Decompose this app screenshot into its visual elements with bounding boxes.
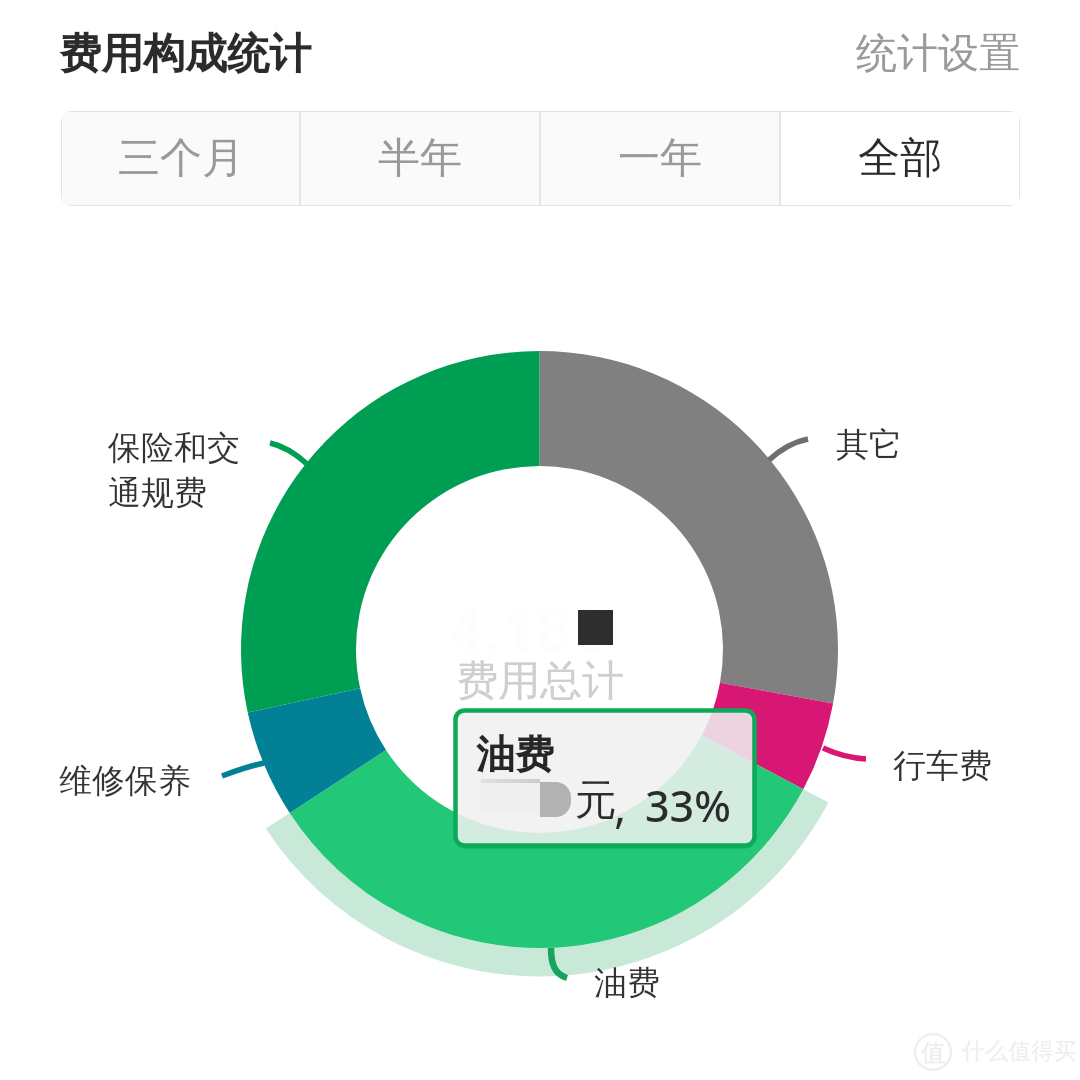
- button[interactable]: 一年: [541, 112, 779, 205]
- staticText: 保险和交 通规费: [108, 427, 240, 513]
- button[interactable]: 统计设置: [856, 28, 1020, 80]
- staticText: 统计设置: [856, 28, 1020, 80]
- staticText: 费用总计: [456, 655, 624, 708]
- button[interactable]: 油费: [453, 708, 757, 848]
- staticText: 油费: [476, 730, 554, 779]
- button[interactable]: 半年: [301, 112, 539, 205]
- staticText: ,: [614, 774, 627, 837]
- staticText: 全部: [858, 132, 942, 185]
- staticText: 33%: [645, 776, 731, 835]
- staticText: 半年: [378, 132, 462, 185]
- staticText: 行车费: [893, 745, 992, 787]
- staticText: 维修保养: [59, 760, 191, 802]
- staticText: 油费: [594, 962, 660, 1004]
- staticText: 4,180: [448, 586, 608, 670]
- button[interactable]: 费用构成饼图: [241, 351, 838, 948]
- button[interactable]: 全部: [781, 112, 1019, 205]
- staticText: 一年: [618, 132, 702, 185]
- staticText: 三个月: [118, 132, 244, 185]
- button[interactable]: 三个月: [62, 112, 299, 205]
- staticText: 元: [575, 774, 617, 827]
- staticText: 其它: [836, 424, 902, 466]
- staticText: 值: [921, 1038, 945, 1068]
- staticText: 什么值得买: [962, 1037, 1077, 1066]
- staticText: 费用构成统计: [59, 28, 311, 81]
